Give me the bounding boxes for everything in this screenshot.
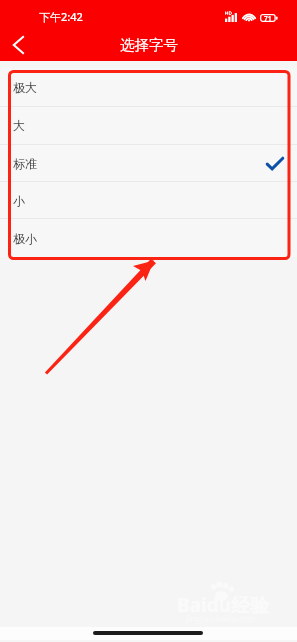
button[interactable]: 标准 xyxy=(0,145,297,181)
staticText: 小 xyxy=(13,193,25,208)
staticText: 大 xyxy=(13,118,25,133)
staticText: 选择字号 xyxy=(120,36,178,54)
button[interactable]: 小 xyxy=(0,182,297,218)
staticText: 71 xyxy=(264,14,272,22)
staticText: 标准 xyxy=(13,156,37,171)
button[interactable]: 大 xyxy=(0,107,297,144)
staticText: 极小 xyxy=(13,231,37,246)
staticText: 极大 xyxy=(13,80,37,95)
button[interactable]: 极小 xyxy=(0,219,297,257)
button[interactable]: 极大 xyxy=(0,68,297,106)
button[interactable]: 返回 xyxy=(0,28,36,61)
staticText: 下午2:42 xyxy=(39,9,83,24)
